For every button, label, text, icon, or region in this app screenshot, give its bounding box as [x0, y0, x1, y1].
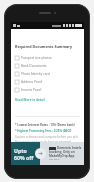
- staticText: Explore schemes and compare before you p…: [15, 135, 80, 139]
- staticText: Upto: [14, 147, 27, 154]
- staticText: Passport size photos: [21, 56, 52, 60]
- button[interactable]: Open offer: [35, 148, 46, 159]
- staticText: Domestic hotels: [57, 146, 82, 150]
- button[interactable]: Read More in detail: [15, 97, 45, 103]
- staticText: T&C apply: [49, 158, 60, 161]
- staticText: Bank Documents: [21, 64, 47, 68]
- staticText: Income Proof: [21, 88, 42, 92]
- button[interactable]: Bank Documents: [15, 62, 80, 70]
- button[interactable]: Passport size photos: [15, 54, 80, 62]
- staticText: Required Documents Summary: [15, 44, 73, 49]
- button[interactable]: Income Proof: [15, 86, 80, 94]
- staticText: Documents and may be kept on payment.: [15, 140, 72, 142]
- button[interactable]: Upto: [11, 142, 84, 165]
- staticText: * Lowest Interest Rates : 10% (Demo bank…: [15, 123, 75, 127]
- staticText: Address Proof: [21, 80, 43, 84]
- staticText: * Highest Processing Fees : 0.25% (ABCD …: [15, 129, 80, 133]
- staticText: Photo Identity card: [21, 72, 50, 76]
- staticText: 60% off: [14, 154, 34, 161]
- staticText: booking, Only on: [49, 150, 75, 154]
- staticText: Read More in detail: [15, 98, 45, 102]
- staticText: MakeMyTrip App: [49, 154, 75, 158]
- button[interactable]: Address Proof: [15, 78, 80, 86]
- button[interactable]: Photo Identity card: [15, 70, 80, 78]
